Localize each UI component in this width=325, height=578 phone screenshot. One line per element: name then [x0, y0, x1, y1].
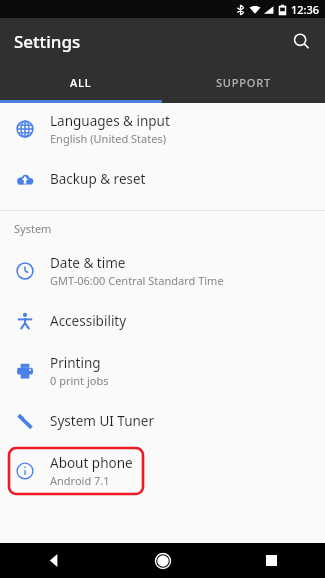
button[interactable]: Search	[283, 23, 319, 59]
button[interactable]: Recent apps	[217, 543, 325, 578]
staticText: GMT-06:00 Central Standard Time	[50, 273, 224, 288]
other: Printing	[0, 362, 50, 380]
button[interactable]: Date and time	[0, 245, 325, 297]
staticText: 0 print jobs	[50, 373, 109, 388]
staticText: Accessibility	[50, 312, 127, 330]
button[interactable]: SUPPORT	[162, 64, 325, 100]
staticText: About phone	[50, 454, 133, 472]
button[interactable]: Printing	[0, 345, 325, 397]
staticText: System	[14, 221, 52, 236]
staticText: ALL	[70, 75, 92, 90]
button[interactable]: ALL	[0, 64, 162, 100]
other: Accessibility	[0, 312, 50, 330]
staticText: Settings	[14, 30, 81, 53]
staticText: English (United States)	[50, 131, 166, 146]
button[interactable]: Accessibility	[0, 297, 325, 345]
button[interactable]: Backup and reset	[0, 155, 325, 203]
button[interactable]: Back	[0, 543, 109, 578]
staticText: System UI Tuner	[50, 412, 155, 430]
staticText: Android 7.1	[50, 473, 110, 488]
staticText: 12:36	[291, 2, 320, 17]
other: System UI Tuner	[0, 412, 50, 430]
other: Backup and reset	[0, 170, 50, 188]
button[interactable]: About phone	[0, 445, 325, 497]
staticText: Languages & input	[50, 112, 170, 130]
staticText: Backup & reset	[50, 170, 146, 188]
other: Date and time	[0, 262, 50, 280]
staticText: SUPPORT	[216, 75, 271, 90]
button[interactable]: System UI Tuner	[0, 397, 325, 445]
other: About phone	[0, 462, 50, 480]
staticText: Date & time	[50, 254, 126, 272]
other: Languages and input	[0, 120, 50, 138]
button[interactable]: Home	[109, 543, 217, 578]
staticText: Printing	[50, 354, 101, 372]
button[interactable]: Languages and input	[0, 103, 325, 155]
